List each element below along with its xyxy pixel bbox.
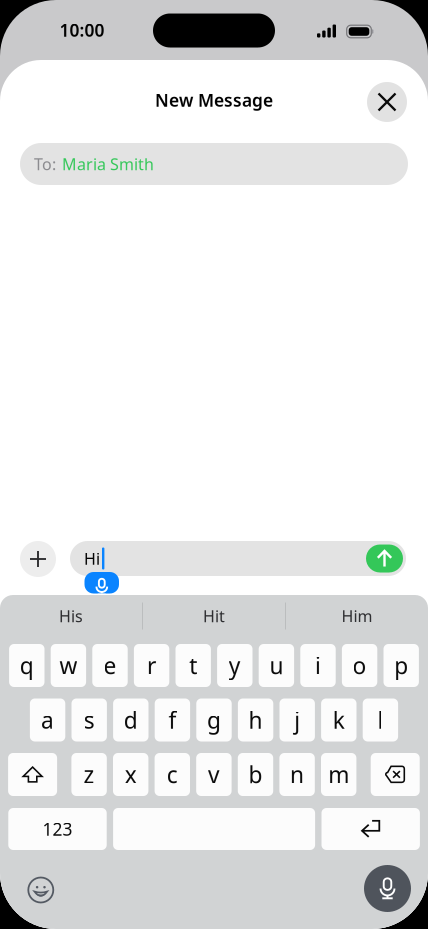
staticText: u — [269, 650, 283, 680]
button[interactable]: p — [383, 644, 419, 687]
button[interactable]: Close — [367, 82, 407, 122]
staticText: h — [249, 705, 263, 735]
button[interactable]: 123 — [8, 808, 107, 850]
button[interactable]: d — [113, 698, 148, 741]
button[interactable]: w — [51, 644, 86, 687]
button[interactable]: i — [300, 644, 336, 687]
button[interactable]: y — [217, 644, 252, 687]
button[interactable]: s — [71, 698, 107, 741]
staticText: y — [229, 650, 241, 680]
staticText: p — [394, 650, 408, 680]
staticText: i — [315, 650, 321, 680]
staticText: z — [84, 759, 95, 789]
button[interactable]: His — [0, 595, 142, 637]
staticText: k — [333, 705, 345, 735]
button[interactable]: x — [113, 753, 148, 796]
staticText: Hit — [203, 605, 225, 627]
staticText: v — [208, 759, 220, 789]
staticText: His — [59, 605, 83, 627]
staticText: To: — [34, 153, 56, 175]
staticText: Maria Smith — [62, 153, 154, 175]
button[interactable]: q — [9, 644, 44, 687]
button[interactable]: Emoji — [28, 877, 54, 903]
button[interactable]: r — [134, 644, 169, 687]
staticText: j — [294, 705, 300, 735]
staticText: Hi — [84, 548, 100, 569]
staticText: New Message — [155, 88, 273, 111]
button[interactable]: f — [155, 698, 190, 741]
button[interactable]: j — [279, 698, 315, 741]
button[interactable]: e — [92, 644, 128, 687]
staticText: q — [20, 650, 34, 680]
button[interactable]: c — [155, 753, 190, 796]
staticText: 10:00 — [59, 18, 104, 41]
staticText: Him — [341, 605, 372, 627]
button[interactable]: z — [71, 753, 107, 796]
staticText: l — [377, 705, 383, 735]
staticText: d — [124, 705, 138, 735]
button[interactable]: Add attachment — [20, 541, 56, 577]
staticText: o — [353, 650, 367, 680]
staticText: b — [248, 759, 262, 789]
button[interactable]: t — [175, 644, 211, 687]
button[interactable]: m — [321, 753, 356, 796]
staticText: w — [59, 650, 77, 680]
button[interactable]: Dictate — [364, 865, 411, 912]
button[interactable]: Shift — [8, 753, 57, 796]
staticText: c — [167, 759, 178, 789]
staticText: n — [290, 759, 304, 789]
staticText: f — [168, 705, 176, 735]
button[interactable]: h — [238, 698, 273, 741]
button[interactable]: k — [321, 698, 356, 741]
button[interactable]: Send — [366, 544, 403, 572]
button[interactable]: n — [279, 753, 315, 796]
staticText: m — [328, 759, 349, 789]
button[interactable]: b — [238, 753, 273, 796]
staticText: e — [103, 650, 116, 680]
staticText: x — [125, 759, 137, 789]
button[interactable]: v — [196, 753, 232, 796]
staticText: t — [189, 650, 197, 680]
button[interactable]: Hit — [143, 595, 285, 637]
staticText: 123 — [42, 817, 72, 840]
staticText: g — [207, 705, 221, 735]
staticText: a — [41, 705, 54, 735]
staticText: r — [147, 650, 156, 680]
button[interactable]: u — [259, 644, 294, 687]
button[interactable]: a — [30, 698, 65, 741]
button[interactable]: Him — [286, 595, 428, 637]
button[interactable]: l — [363, 698, 398, 741]
button[interactable]: o — [342, 644, 377, 687]
staticText: s — [84, 705, 95, 735]
button[interactable]: Delete — [371, 753, 420, 796]
button[interactable]: Return — [321, 808, 420, 850]
button[interactable]: g — [196, 698, 232, 741]
button[interactable]: Dictate — [84, 572, 119, 593]
